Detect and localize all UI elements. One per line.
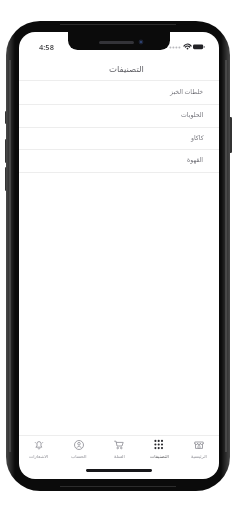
button[interactable]: خلطات الخبز (19, 80, 219, 104)
staticText: التصنيفات (109, 64, 144, 74)
staticText: الرئيسية (191, 454, 207, 459)
staticText: خلطات الخبز (170, 87, 204, 95)
staticText: الحساب (71, 454, 87, 459)
button[interactable]: السلة (100, 436, 138, 462)
button[interactable]: الاشعارات (20, 436, 58, 462)
staticText: التصنيفات (150, 454, 169, 459)
staticText: السلة (114, 454, 125, 459)
staticText: القهوة (187, 156, 204, 163)
staticText: كاكاو (191, 134, 204, 141)
button[interactable]: التصنيفات (140, 436, 178, 462)
staticText: الحلويات (181, 111, 204, 118)
staticText: الاشعارات (29, 454, 49, 459)
button[interactable]: القهوة (19, 149, 219, 172)
button[interactable]: الحساب (60, 436, 98, 462)
button[interactable]: الحلويات (19, 104, 219, 127)
staticText: 4:58 (39, 42, 54, 52)
button[interactable]: الرئيسية (180, 436, 218, 462)
button[interactable]: كاكاو (19, 127, 219, 150)
